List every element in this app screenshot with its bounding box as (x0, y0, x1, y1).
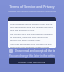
button[interactable]: I have read and accept all the terms (9, 49, 55, 53)
staticText: I have read and accept all the terms (15, 49, 55, 53)
button[interactable]: The following terms govern your use of t… (8, 17, 56, 48)
staticText: You can change this later in the setting… (9, 54, 55, 58)
staticText: Terms of Service and Privacy (1, 4, 63, 9)
staticText: You may withdraw your consent at any tim… (10, 43, 54, 48)
staticText: We collect only the information needed t… (10, 33, 54, 42)
button[interactable]: ACCEPT AND CONTINUE (9, 58, 55, 64)
staticText: ACCEPT AND CONTINUE (18, 60, 46, 63)
staticText: The following terms govern your use of t… (10, 23, 54, 32)
staticText: Review the details below before continui… (8, 9, 56, 12)
